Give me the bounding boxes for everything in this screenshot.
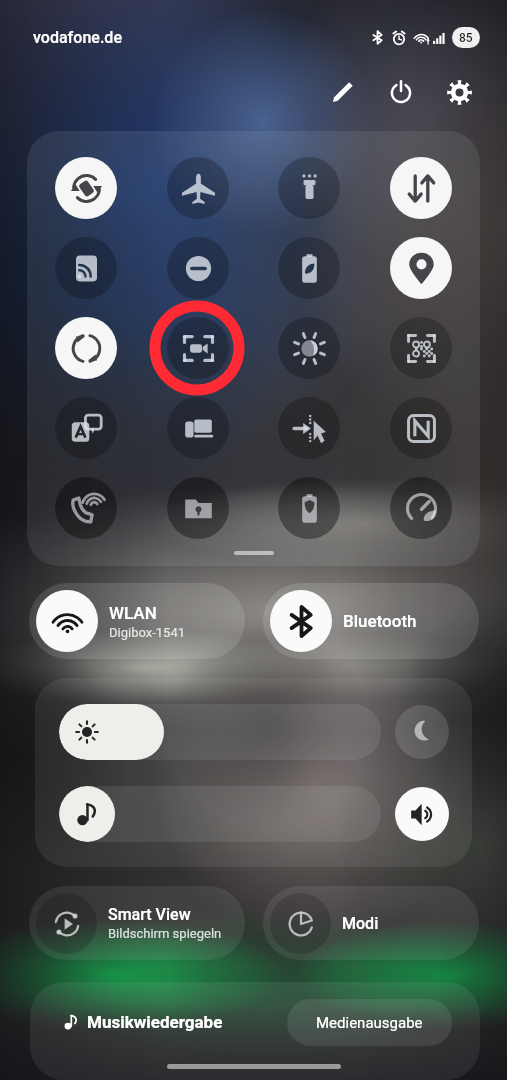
button[interactable]: Blue light filter	[278, 317, 340, 379]
staticText: Musikwiedergabe	[87, 1012, 223, 1032]
button[interactable]: Musikwiedergabe	[63, 1001, 223, 1043]
button[interactable]: WLAN	[29, 583, 245, 659]
button[interactable]: Device care	[390, 477, 452, 539]
button[interactable]: Secure folder	[167, 477, 229, 539]
staticText: Bluetooth	[343, 611, 417, 631]
button[interactable]: Mobile data	[390, 157, 452, 219]
button[interactable]: Screen recorder	[167, 317, 229, 379]
button[interactable]: Settings	[435, 68, 483, 116]
staticText: Bildschirm spiegeln	[108, 926, 222, 941]
button[interactable]: Scan QR code	[390, 317, 452, 379]
staticText: vodafone.de	[33, 28, 122, 47]
button[interactable]: Flashlight	[278, 157, 340, 219]
staticText: Medienausgabe	[316, 1014, 423, 1032]
button[interactable]: Power	[377, 68, 425, 116]
button[interactable]: Brightness	[59, 704, 381, 760]
button[interactable]: Modi	[263, 886, 479, 960]
button[interactable]: Translate	[55, 397, 117, 459]
button[interactable]: Power saving	[278, 237, 340, 299]
button[interactable]: Sync	[55, 317, 117, 379]
button[interactable]: Smart View	[29, 886, 245, 960]
button[interactable]: Do not disturb	[167, 237, 229, 299]
button[interactable]: Media volume	[59, 786, 381, 842]
button[interactable]: Sound	[395, 787, 449, 841]
button[interactable]: Wi-Fi calling	[55, 477, 117, 539]
button[interactable]: NFC	[390, 397, 452, 459]
button[interactable]: Medienausgabe	[287, 999, 452, 1046]
button[interactable]: Location	[390, 237, 452, 299]
staticText: 85	[459, 31, 473, 45]
button[interactable]: Link to Windows	[167, 397, 229, 459]
button[interactable]: Airplane mode	[167, 157, 229, 219]
staticText: Digibox-1541	[109, 625, 186, 640]
button[interactable]: Hotspot	[55, 237, 117, 299]
button[interactable]: Bluetooth	[263, 583, 479, 659]
button[interactable]: Auto rotate	[55, 157, 117, 219]
button[interactable]: Device protection	[278, 477, 340, 539]
button[interactable]: Dark mode	[395, 705, 449, 759]
button[interactable]: Edit	[319, 68, 367, 116]
staticText: Smart View	[108, 905, 191, 924]
staticText: WLAN	[109, 603, 157, 623]
staticText: Modi	[342, 914, 379, 933]
button[interactable]: Mouse pointer	[278, 397, 340, 459]
